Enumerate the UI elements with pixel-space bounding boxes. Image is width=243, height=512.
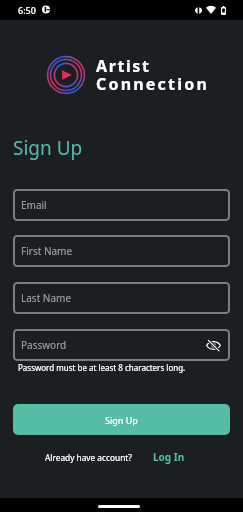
staticText: Password [21, 338, 67, 352]
button[interactable]: Email [13, 189, 230, 221]
button[interactable]: Show password [203, 335, 223, 355]
staticText: Artist [96, 55, 151, 77]
staticText: Connection [96, 73, 210, 95]
staticText: Email [21, 198, 47, 212]
staticText: Last Name [21, 291, 72, 305]
button[interactable]: Sign Up [13, 404, 230, 435]
staticText: Log In [153, 450, 185, 464]
staticText: Sign Up [13, 135, 83, 161]
button[interactable]: Last Name [13, 282, 230, 314]
button[interactable]: First Name [13, 235, 230, 267]
staticText: First Name [21, 244, 73, 258]
button[interactable]: Log In [153, 450, 185, 464]
staticText: 6:50 [18, 4, 36, 16]
staticText: Password must be at least 8 characters l… [18, 362, 186, 373]
staticText: Already have account? [45, 452, 132, 463]
button[interactable]: Password [13, 329, 230, 361]
staticText: Sign Up [105, 414, 138, 426]
